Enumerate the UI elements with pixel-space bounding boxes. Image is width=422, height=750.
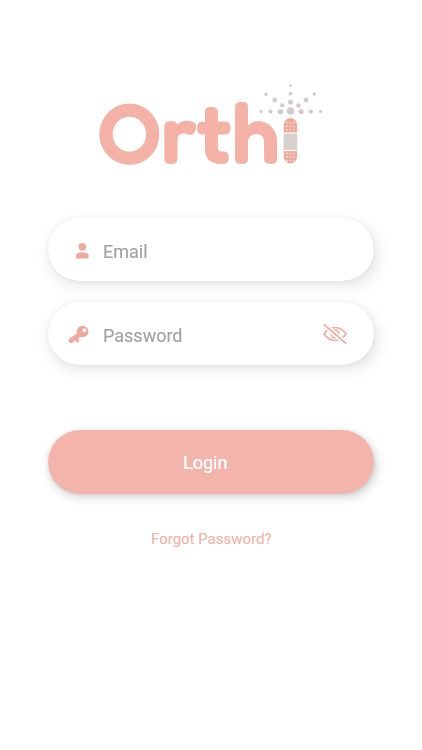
button[interactable]: Show password bbox=[320, 319, 350, 349]
staticText: Password bbox=[103, 325, 183, 346]
staticText: Email bbox=[103, 241, 148, 262]
staticText: Login bbox=[183, 452, 228, 473]
button[interactable]: Password bbox=[48, 302, 374, 365]
button[interactable]: Email bbox=[48, 218, 374, 281]
button[interactable]: Login bbox=[48, 430, 374, 494]
button[interactable]: Forgot Password? bbox=[151, 530, 272, 548]
